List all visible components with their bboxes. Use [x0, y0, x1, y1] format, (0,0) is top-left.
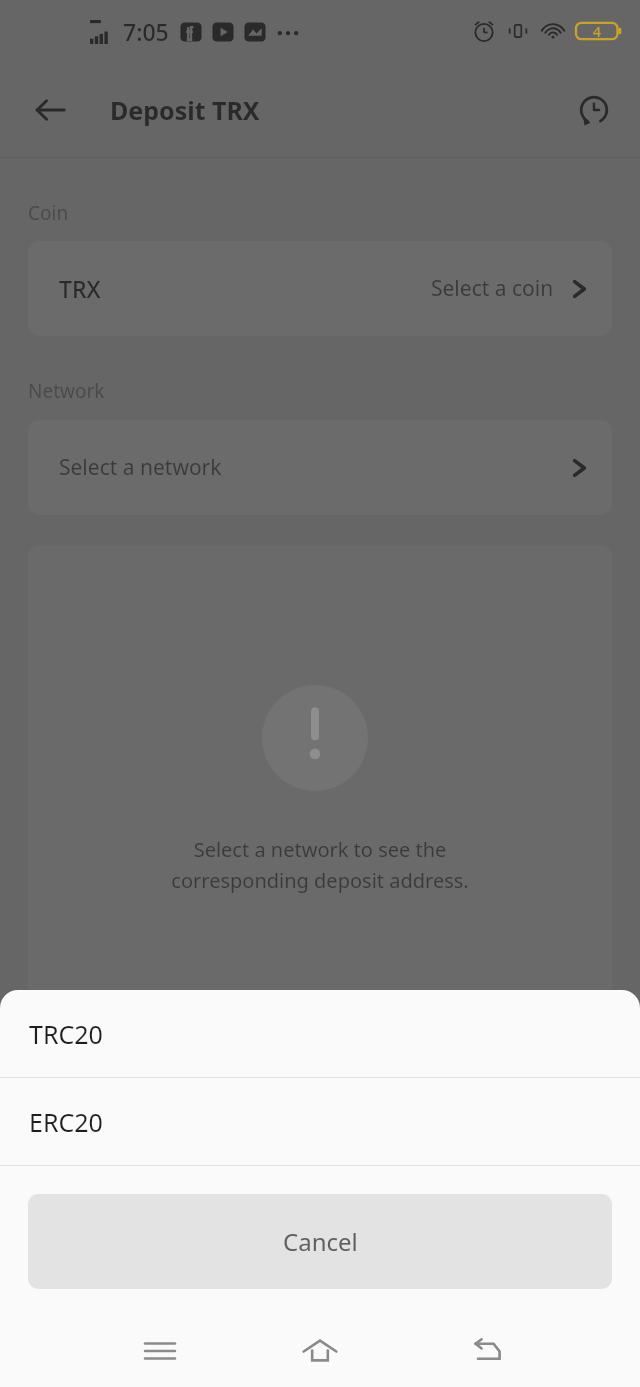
button[interactable]: Cancel — [28, 1194, 612, 1289]
button[interactable]: Back — [453, 1317, 521, 1385]
button[interactable]: Back — [26, 86, 74, 134]
staticText: TRX — [59, 273, 101, 304]
staticText: Select a network to see the correspondin… — [28, 836, 612, 893]
button[interactable]: TRX — [28, 241, 612, 336]
staticText: Network — [28, 378, 105, 404]
staticText: 7:05 — [123, 16, 169, 47]
staticText: Select a coin — [431, 274, 554, 303]
staticText: 4 — [593, 22, 602, 41]
button[interactable]: History — [570, 86, 618, 134]
button[interactable]: TRC20 — [0, 990, 640, 1077]
button[interactable]: Home — [286, 1317, 354, 1385]
staticText: Select a network — [59, 453, 222, 482]
button[interactable]: Recent apps — [126, 1317, 194, 1385]
staticText: Coin — [28, 200, 69, 226]
staticText: Deposit TRX — [110, 93, 260, 127]
button[interactable]: ERC20 — [0, 1078, 640, 1165]
staticText: TRC20 — [29, 1017, 103, 1051]
staticText: ERC20 — [29, 1105, 103, 1139]
staticText: Cancel — [283, 1225, 358, 1258]
button[interactable]: Select a network — [28, 420, 612, 515]
